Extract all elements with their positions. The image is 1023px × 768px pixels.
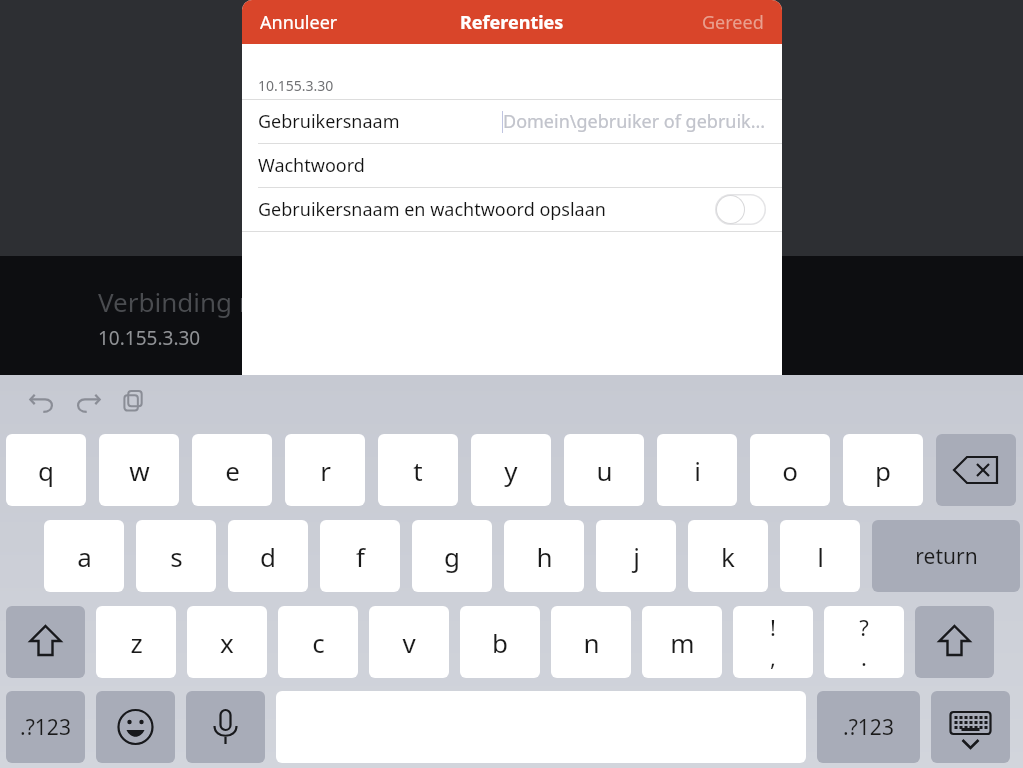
staticText: h — [536, 539, 553, 574]
button[interactable]: g — [412, 520, 492, 592]
button[interactable]: e — [192, 434, 272, 506]
staticText: Annuleer — [260, 10, 338, 35]
staticText: a — [77, 539, 92, 574]
staticText: s — [170, 539, 183, 574]
button[interactable]: Shift — [915, 606, 994, 678]
staticText: v — [402, 625, 416, 660]
staticText: l — [817, 539, 824, 574]
staticText: y — [504, 453, 518, 488]
staticText: Wachtwoord — [258, 153, 365, 178]
staticText: .?123 — [20, 713, 71, 742]
staticText: Gereed — [702, 10, 764, 35]
staticText: k — [721, 539, 735, 574]
staticText: m — [670, 625, 695, 660]
staticText: p — [875, 453, 891, 488]
button[interactable]: b — [460, 606, 540, 678]
staticText: n — [583, 625, 600, 660]
staticText: ? . — [859, 612, 869, 672]
button[interactable]: ! , — [733, 606, 813, 678]
button[interactable]: l — [780, 520, 860, 592]
button[interactable]: n — [551, 606, 631, 678]
button[interactable]: Shift — [6, 606, 85, 678]
button[interactable]: y — [471, 434, 551, 506]
button[interactable]: .?123 — [817, 691, 920, 763]
button[interactable]: t — [378, 434, 458, 506]
button[interactable]: Gebruikersnaam en wachtwoord opslaan — [242, 188, 782, 231]
staticText: b — [492, 625, 508, 660]
button[interactable]: Gereed — [688, 2, 778, 43]
button[interactable]: m — [642, 606, 722, 678]
button[interactable]: Save credentials toggle — [715, 194, 766, 225]
button[interactable]: z — [96, 606, 176, 678]
staticText: Gebruikersnaam en wachtwoord opslaan — [258, 197, 606, 222]
button[interactable]: ? . — [824, 606, 904, 678]
button[interactable]: c — [278, 606, 358, 678]
button[interactable]: Redo — [68, 381, 108, 421]
button[interactable]: i — [657, 434, 737, 506]
staticText: .?123 — [843, 713, 894, 742]
staticText: u — [596, 453, 613, 488]
button[interactable]: f — [320, 520, 400, 592]
button[interactable]: d — [228, 520, 308, 592]
staticText: o — [782, 453, 798, 488]
button[interactable]: p — [843, 434, 923, 506]
staticText: z — [130, 625, 143, 660]
staticText: j — [633, 539, 640, 574]
button[interactable]: s — [136, 520, 216, 592]
button[interactable]: Emoji — [96, 691, 175, 763]
button[interactable]: h — [504, 520, 584, 592]
button[interactable]: w — [99, 434, 179, 506]
button[interactable]: v — [369, 606, 449, 678]
staticText: f — [356, 539, 365, 574]
staticText: 10.155.3.30 — [258, 76, 334, 95]
staticText: t — [413, 453, 423, 488]
button[interactable]: Gebruikersnaam — [242, 100, 782, 143]
button[interactable]: x — [187, 606, 267, 678]
button[interactable]: Paste — [114, 381, 154, 421]
button[interactable]: a — [44, 520, 124, 592]
button[interactable]: return — [872, 520, 1020, 592]
staticText: Gebruikersnaam — [258, 109, 400, 134]
button[interactable]: Annuleer — [246, 2, 352, 43]
button[interactable]: u — [564, 434, 644, 506]
staticText: ! , — [770, 612, 776, 672]
staticText: c — [312, 625, 325, 660]
staticText: r — [320, 453, 331, 488]
staticText: Referenties — [460, 10, 564, 35]
button[interactable]: .?123 — [6, 691, 85, 763]
button[interactable]: r — [285, 434, 365, 506]
staticText: g — [444, 539, 460, 574]
button[interactable]: k — [688, 520, 768, 592]
staticText: x — [220, 625, 234, 660]
staticText: Verbinding maken met — [98, 284, 378, 319]
button[interactable]: Wachtwoord — [242, 144, 782, 187]
button[interactable]: o — [750, 434, 830, 506]
button[interactable]: Undo — [22, 381, 62, 421]
staticText: q — [38, 453, 54, 488]
button[interactable]: Backspace — [936, 434, 1016, 506]
button[interactable]: j — [596, 520, 676, 592]
button[interactable]: Dictate — [186, 691, 265, 763]
staticText: e — [225, 453, 240, 488]
staticText: 10.155.3.30 — [98, 325, 201, 351]
button[interactable]: Hide keyboard — [931, 691, 1010, 763]
staticText: i — [694, 453, 701, 488]
staticText: w — [129, 453, 150, 488]
button[interactable]: q — [6, 434, 86, 506]
staticText: d — [260, 539, 276, 574]
staticText: return — [915, 542, 978, 571]
staticText: Domein\gebruiker of gebruik... — [503, 109, 766, 134]
